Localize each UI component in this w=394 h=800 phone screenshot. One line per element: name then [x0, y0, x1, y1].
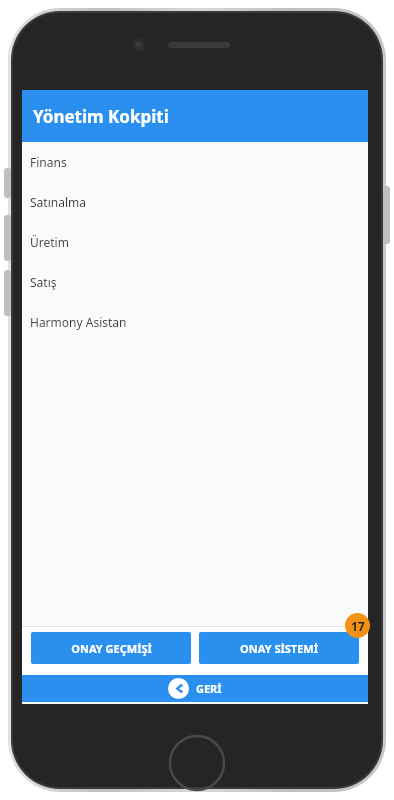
button[interactable]: ONAY GEÇMİŞİ: [31, 632, 191, 664]
staticText: GERİ: [196, 681, 222, 696]
button[interactable]: Harmony Asistan: [22, 302, 368, 342]
button[interactable]: Finans: [22, 142, 368, 182]
staticText: Satış: [30, 274, 57, 290]
button[interactable]: Üretim: [22, 222, 368, 262]
button[interactable]: Satınalma: [22, 182, 368, 222]
button[interactable]: Geri: [22, 675, 368, 702]
staticText: Yönetim Kokpiti: [33, 105, 169, 128]
staticText: ONAY SİSTEMİ: [240, 641, 318, 656]
button[interactable]: ONAY SİSTEMİ: [199, 632, 359, 664]
staticText: Finans: [30, 154, 67, 170]
button[interactable]: 17: [345, 613, 370, 638]
other: Geri: [168, 678, 189, 699]
staticText: Harmony Asistan: [30, 314, 127, 330]
staticText: Satınalma: [30, 194, 86, 210]
staticText: 17: [351, 618, 365, 634]
staticText: Üretim: [30, 234, 69, 250]
button[interactable]: Satış: [22, 262, 368, 302]
staticText: ONAY GEÇMİŞİ: [71, 641, 152, 656]
